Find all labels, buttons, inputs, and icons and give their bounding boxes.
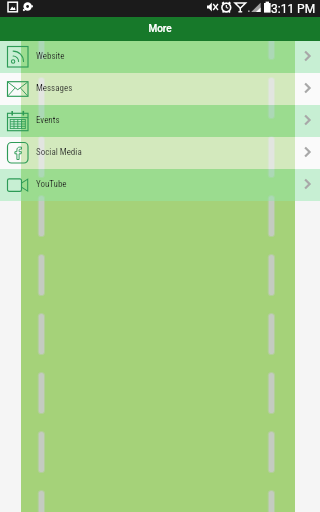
button[interactable]: Messages [0,73,320,105]
staticText: YouTube [36,179,67,190]
staticText: 3:11 PM [271,2,316,16]
staticText: More [148,23,172,35]
button[interactable]: Website [0,41,320,73]
button[interactable]: Events [0,105,320,137]
staticText: Social Media [36,147,82,158]
staticText: Website [36,51,65,62]
staticText: Events [36,115,60,126]
staticText: Messages [36,83,73,94]
button[interactable]: Social Media [0,137,320,169]
button[interactable]: YouTube [0,169,320,201]
